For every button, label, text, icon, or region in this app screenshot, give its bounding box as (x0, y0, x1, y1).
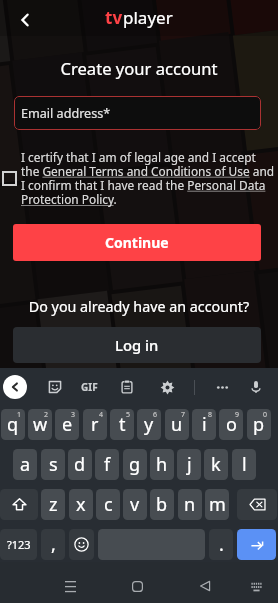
button[interactable]: More options (210, 375, 234, 399)
button[interactable]: Clipboard (115, 375, 139, 399)
staticText: r (91, 412, 99, 437)
button[interactable]: Backspace (237, 489, 277, 520)
staticText: 1 (17, 410, 22, 420)
staticText: o (226, 412, 237, 437)
button[interactable]: a (13, 449, 37, 480)
button[interactable]: Recent apps (56, 572, 84, 600)
staticText: z (49, 492, 58, 517)
staticText: 6 (153, 410, 158, 420)
button[interactable]: f (95, 449, 119, 480)
staticText: Continue (105, 233, 169, 252)
staticText: 9 (235, 410, 240, 420)
button[interactable]: Switch keyboard (242, 572, 270, 600)
staticText: Log in (115, 335, 159, 355)
staticText: Do you already have an account? (0, 297, 278, 316)
button[interactable]: Voice input (244, 375, 268, 399)
staticText: Create your account (0, 57, 278, 80)
staticText: 4 (99, 410, 104, 420)
button[interactable]: l (232, 449, 256, 480)
staticText: GIF (81, 380, 98, 394)
staticText: e (62, 412, 73, 437)
staticText: l (242, 452, 247, 477)
button[interactable]: w (28, 409, 52, 440)
staticText: a (20, 452, 31, 477)
staticText: q (7, 412, 19, 437)
button[interactable]: GIF (77, 375, 101, 399)
button[interactable]: Enter (237, 529, 276, 560)
staticText: ?123 (7, 537, 31, 552)
staticText: x (76, 492, 86, 517)
button[interactable]: s (41, 449, 65, 480)
staticText: c (104, 492, 113, 517)
button[interactable]: e (55, 409, 79, 440)
button[interactable]: z (41, 489, 65, 520)
button[interactable]: i (192, 409, 216, 440)
staticText: t (119, 412, 126, 437)
staticText: p (253, 412, 265, 437)
button[interactable]: j (177, 449, 201, 480)
button[interactable]: Previous (3, 375, 27, 399)
button[interactable]: Symbols (0, 529, 37, 560)
button[interactable]: h (150, 449, 174, 480)
button[interactable]: t (110, 409, 134, 440)
staticText: 0 (263, 410, 268, 420)
button[interactable]: Shift (0, 489, 38, 520)
staticText: w (33, 412, 48, 437)
staticText: 2 (44, 410, 49, 420)
button[interactable]: m (205, 489, 229, 520)
button[interactable]: u (165, 409, 189, 440)
staticText: h (156, 452, 168, 477)
staticText: i (202, 412, 207, 437)
button[interactable]: k (204, 449, 228, 480)
button[interactable]: Back (191, 572, 219, 600)
button[interactable]: Log in (13, 327, 261, 363)
button[interactable]: v (123, 489, 147, 520)
button[interactable]: Email address* (14, 96, 261, 130)
button[interactable]: d (68, 449, 92, 480)
button[interactable]: Emoji (69, 529, 94, 560)
staticText: I certify that I am of legal age and I a… (21, 149, 277, 208)
button[interactable]: r (83, 409, 107, 440)
staticText: u (171, 412, 183, 437)
button[interactable]: , (41, 529, 65, 560)
staticText: player (123, 6, 173, 29)
staticText: n (184, 492, 196, 517)
staticText: 8 (208, 410, 213, 420)
staticText: f (104, 452, 111, 477)
button[interactable]: Continue (13, 224, 261, 261)
staticText: 7 (181, 410, 186, 420)
staticText: 3 (71, 410, 76, 420)
button[interactable]: b (150, 489, 174, 520)
staticText: . (219, 532, 224, 557)
button[interactable]: I certify that I am of legal age (0, 163, 24, 193)
button[interactable]: g (123, 449, 147, 480)
staticText: 5 (126, 410, 131, 420)
button[interactable]: y (137, 409, 161, 440)
staticText: , (51, 532, 56, 557)
button[interactable]: q (1, 409, 25, 440)
button[interactable]: n (178, 489, 202, 520)
staticText: y (144, 412, 154, 437)
staticText: d (74, 452, 86, 477)
button[interactable]: Stickers (43, 375, 67, 399)
staticText: tv (105, 6, 123, 29)
button[interactable]: . (209, 529, 233, 560)
button[interactable]: Home (123, 572, 151, 600)
staticText: s (49, 452, 58, 477)
button[interactable]: c (96, 489, 120, 520)
staticText: b (156, 492, 168, 517)
button[interactable]: Back (5, 0, 45, 40)
staticText: v (130, 492, 140, 517)
staticText: g (129, 452, 141, 477)
staticText: m (209, 492, 226, 517)
staticText: j (187, 452, 192, 477)
staticText: k (211, 452, 221, 477)
button[interactable]: p (247, 409, 271, 440)
staticText: Email address* (21, 105, 111, 122)
button[interactable]: x (69, 489, 93, 520)
button[interactable]: o (219, 409, 243, 440)
button[interactable]: Settings (155, 375, 179, 399)
